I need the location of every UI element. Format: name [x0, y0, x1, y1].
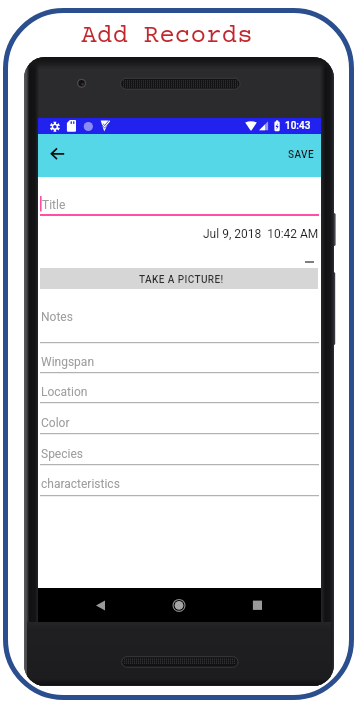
staticText: Title — [42, 198, 66, 212]
staticText: Add Records — [0, 22, 348, 51]
button[interactable]: Title — [40, 193, 319, 217]
staticText: Jul 9, 2018 10:42 AM — [203, 227, 319, 241]
staticText: characteristics — [41, 477, 120, 491]
button[interactable]: Recent apps — [239, 592, 265, 618]
button[interactable]: Home — [159, 592, 185, 618]
button[interactable]: Color — [40, 412, 319, 435]
staticText: SAVE — [288, 149, 314, 161]
button[interactable]: Species — [40, 443, 319, 466]
button[interactable]: Jul 9, 2018 10:42 AM — [40, 224, 319, 244]
staticText: 10:43 — [285, 120, 311, 132]
button[interactable]: characteristics — [40, 473, 319, 497]
button[interactable]: Navigate back — [40, 136, 70, 166]
button[interactable]: TAKE A PICTURE! — [40, 268, 318, 289]
button[interactable]: Wingspan — [40, 351, 319, 374]
staticText: TAKE A PICTURE! — [139, 274, 224, 286]
button[interactable]: SAVE — [285, 142, 317, 168]
staticText: Location — [41, 385, 88, 399]
button[interactable]: Location — [40, 381, 319, 404]
staticText: Color — [41, 416, 70, 430]
button[interactable]: Notes — [40, 306, 319, 344]
staticText: Species — [41, 447, 83, 461]
button[interactable]: Back — [82, 592, 108, 618]
staticText: Wingspan — [41, 355, 95, 369]
staticText: Notes — [41, 310, 73, 324]
